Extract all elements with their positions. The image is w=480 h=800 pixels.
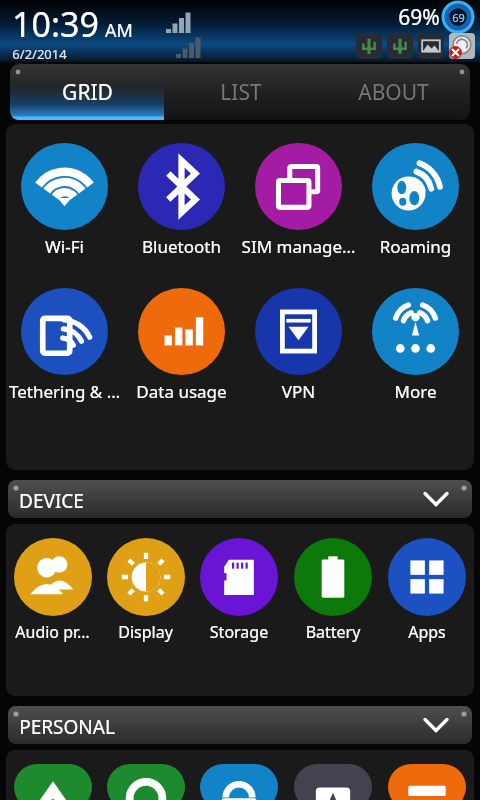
- button[interactable]: Data usage: [123, 288, 240, 403]
- button[interactable]: Wi-Fi: [6, 143, 123, 258]
- staticText: DEVICE: [19, 488, 84, 514]
- button[interactable]: Battery: [286, 538, 380, 643]
- button[interactable]: Bluetooth: [123, 143, 240, 258]
- button[interactable]: Collapse DEVICE section: [8, 480, 472, 518]
- staticText: Tethering & …: [6, 380, 123, 403]
- staticText: Battery: [286, 621, 380, 643]
- button[interactable]: Lock screen: [99, 764, 192, 800]
- staticText: Bluetooth: [123, 235, 240, 258]
- staticText: Wi-Fi: [6, 235, 123, 258]
- button[interactable]: More: [357, 288, 474, 403]
- button[interactable]: Audio profiles: [6, 538, 99, 643]
- staticText: VPN: [240, 380, 357, 403]
- staticText: AM: [105, 18, 133, 43]
- button[interactable]: Location: [6, 764, 99, 800]
- staticText: PERSONAL: [19, 714, 115, 740]
- staticText: ABOUT: [358, 78, 429, 107]
- staticText: Storage: [192, 621, 286, 643]
- button[interactable]: Storage: [192, 538, 286, 643]
- staticText: Display: [99, 621, 192, 643]
- button[interactable]: VPN: [240, 288, 357, 403]
- button[interactable]: Backup and reset: [380, 764, 474, 800]
- button[interactable]: ABOUT: [317, 64, 470, 120]
- button[interactable]: Apps: [380, 538, 474, 643]
- staticText: 6/2/2014: [12, 45, 67, 60]
- button[interactable]: GRID: [10, 64, 164, 120]
- staticText: SIM manage…: [240, 235, 357, 258]
- staticText: Roaming: [357, 235, 474, 258]
- staticText: Audio pr…: [6, 621, 99, 643]
- button[interactable]: Tethering: [6, 288, 123, 403]
- staticText: GRID: [62, 78, 113, 107]
- staticText: Apps: [380, 621, 474, 643]
- staticText: 10:39: [12, 1, 99, 47]
- button[interactable]: Language and input: [286, 764, 380, 800]
- button[interactable]: Roaming: [357, 143, 474, 258]
- staticText: LIST: [220, 78, 262, 107]
- button[interactable]: LIST: [164, 64, 317, 120]
- staticText: 69%: [398, 3, 440, 32]
- button[interactable]: Display: [99, 538, 192, 643]
- button[interactable]: Security: [192, 764, 286, 800]
- button[interactable]: SIM manager: [240, 143, 357, 258]
- staticText: Data usage: [123, 380, 240, 403]
- staticText: 69: [452, 10, 465, 25]
- staticText: More: [357, 380, 474, 403]
- button[interactable]: Collapse PERSONAL section: [8, 706, 472, 744]
